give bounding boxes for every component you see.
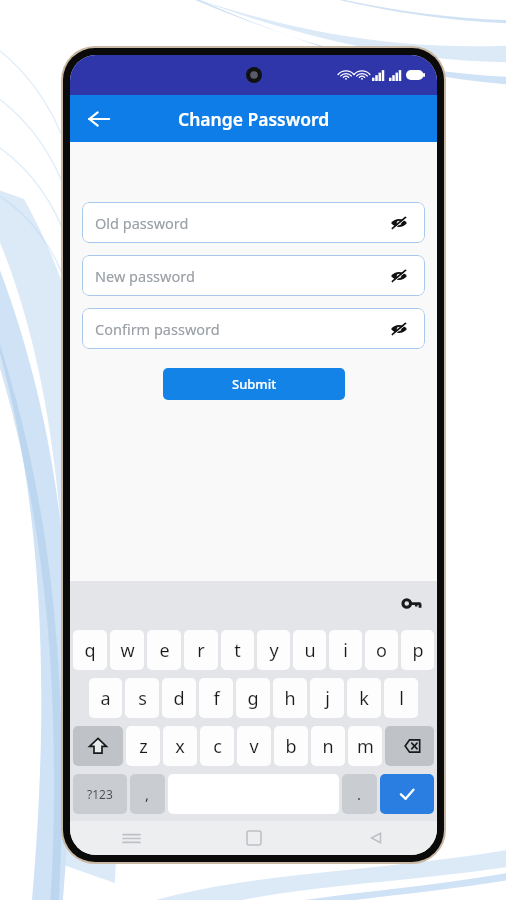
button[interactable]: a bbox=[89, 678, 122, 718]
button[interactable]: n bbox=[311, 726, 345, 766]
button[interactable]: s bbox=[125, 678, 159, 718]
staticText: x bbox=[175, 734, 185, 759]
staticText: d bbox=[173, 686, 185, 711]
staticText: e bbox=[159, 638, 170, 663]
button[interactable]: Toggle password visibility bbox=[386, 210, 412, 236]
button[interactable]: c bbox=[200, 726, 234, 766]
button[interactable]: e bbox=[147, 630, 181, 670]
staticText: m bbox=[357, 734, 374, 759]
button[interactable]: k bbox=[347, 678, 381, 718]
button[interactable]: New password bbox=[82, 255, 425, 296]
button[interactable]: Password manager bbox=[397, 590, 425, 618]
button[interactable]: r bbox=[184, 630, 218, 670]
staticText: q bbox=[84, 638, 96, 663]
button[interactable]: Recents bbox=[70, 821, 193, 855]
staticText: i bbox=[343, 638, 348, 663]
button[interactable]: Submit bbox=[163, 368, 345, 400]
staticText: New password bbox=[95, 266, 195, 286]
staticText: o bbox=[376, 638, 387, 663]
button[interactable]: Toggle password visibility bbox=[386, 316, 412, 342]
button[interactable]: y bbox=[257, 630, 290, 670]
button[interactable]: h bbox=[273, 678, 307, 718]
staticText: Submit bbox=[232, 375, 277, 393]
staticText: a bbox=[100, 686, 111, 711]
button[interactable]: t bbox=[221, 630, 254, 670]
staticText: n bbox=[322, 734, 334, 759]
staticText: ?123 bbox=[87, 786, 113, 802]
button[interactable]: u bbox=[293, 630, 326, 670]
button[interactable]: Backspace bbox=[385, 726, 434, 766]
staticText: r bbox=[197, 638, 205, 663]
button[interactable]: p bbox=[401, 630, 434, 670]
button[interactable]: Home bbox=[193, 821, 315, 855]
button[interactable]: x bbox=[163, 726, 197, 766]
staticText: , bbox=[145, 784, 150, 804]
staticText: z bbox=[139, 734, 148, 759]
button[interactable]: f bbox=[199, 678, 233, 718]
staticText: p bbox=[412, 638, 424, 663]
button[interactable]: i bbox=[329, 630, 362, 670]
button[interactable]: m bbox=[348, 726, 382, 766]
button[interactable]: Shift bbox=[73, 726, 123, 766]
button[interactable]: w bbox=[110, 630, 144, 670]
staticText: t bbox=[234, 638, 241, 663]
staticText: Change Password bbox=[178, 107, 330, 131]
button[interactable]: Comma bbox=[130, 774, 165, 814]
staticText: Old password bbox=[95, 213, 189, 233]
button[interactable]: Confirm password bbox=[82, 308, 425, 349]
staticText: j bbox=[325, 686, 330, 711]
staticText: . bbox=[357, 784, 362, 804]
button[interactable]: v bbox=[237, 726, 271, 766]
staticText: c bbox=[213, 734, 222, 759]
button[interactable]: ?123 bbox=[73, 774, 127, 814]
staticText: b bbox=[285, 734, 297, 759]
staticText: h bbox=[284, 686, 296, 711]
button[interactable]: Back bbox=[78, 98, 120, 140]
staticText: w bbox=[120, 638, 135, 663]
staticText: y bbox=[269, 638, 279, 663]
button[interactable]: z bbox=[126, 726, 160, 766]
button[interactable]: Toggle password visibility bbox=[386, 263, 412, 289]
staticText: u bbox=[304, 638, 316, 663]
staticText: s bbox=[138, 686, 147, 711]
staticText: g bbox=[247, 686, 259, 711]
button[interactable]: d bbox=[162, 678, 196, 718]
button[interactable]: j bbox=[310, 678, 344, 718]
button[interactable]: b bbox=[274, 726, 308, 766]
button[interactable]: Old password bbox=[82, 202, 425, 243]
button[interactable]: g bbox=[236, 678, 270, 718]
button[interactable]: l bbox=[384, 678, 418, 718]
staticText: f bbox=[213, 686, 220, 711]
button[interactable]: Enter bbox=[380, 774, 434, 814]
staticText: v bbox=[249, 734, 259, 759]
button[interactable]: Period bbox=[342, 774, 377, 814]
staticText: Confirm password bbox=[95, 319, 220, 339]
staticText: l bbox=[399, 686, 404, 711]
staticText: k bbox=[359, 686, 369, 711]
button[interactable]: o bbox=[365, 630, 398, 670]
button[interactable]: Back bbox=[315, 821, 437, 855]
button[interactable]: q bbox=[73, 630, 107, 670]
